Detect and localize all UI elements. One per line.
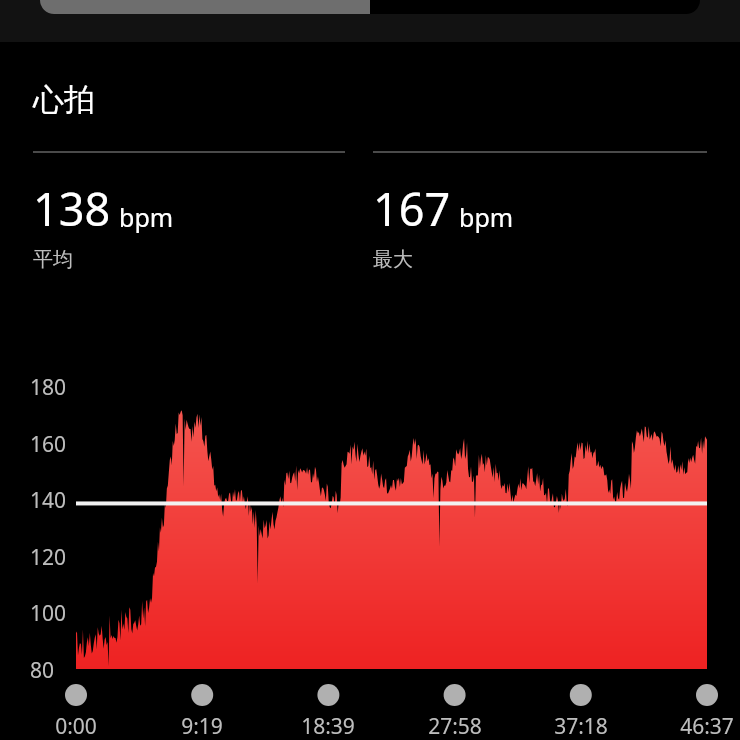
button[interactable]: Playback progress: [40, 0, 700, 14]
staticText: 160: [30, 430, 67, 459]
staticText: 80: [30, 656, 55, 685]
staticText: 140: [30, 486, 67, 515]
staticText: 100: [30, 599, 67, 628]
staticText: 最大: [373, 247, 413, 272]
button[interactable]: 167: [373, 151, 707, 272]
staticText: 167: [373, 178, 451, 239]
staticText: 120: [30, 543, 67, 572]
staticText: 9:19: [142, 712, 262, 740]
staticText: 0:00: [16, 712, 136, 740]
staticText: 46:37: [647, 712, 740, 740]
button[interactable]: 138: [33, 151, 345, 272]
staticText: bpm: [119, 200, 174, 234]
staticText: 37:18: [521, 712, 641, 740]
staticText: 平均: [33, 247, 73, 272]
staticText: 27:58: [395, 712, 515, 740]
staticText: 138: [33, 178, 111, 239]
staticText: 18:39: [268, 712, 388, 740]
staticText: 心拍: [33, 80, 95, 119]
staticText: bpm: [459, 200, 514, 234]
staticText: 180: [30, 373, 67, 402]
